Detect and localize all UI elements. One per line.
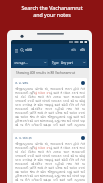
staticText: ગ. પ્ર. પ્રથમ [15,80,29,85]
button[interactable]: Bookmark [81,81,85,85]
staticText: શ્રીજીમહારાજ બોલ્યા જે, ભગવાનનો ભક્ત હોય… [15,142,85,182]
staticText: Type Any part [52,61,73,65]
staticText: નોંધ [80,49,85,52]
staticText: શોધો [25,48,33,52]
staticText: શ્રીજીમહારાજ બોલ્યા જે, ભગવાનનો ભક્ત હોય… [15,87,85,127]
staticText: શોધ [71,49,76,52]
staticText: ગ. મ. મધ્ય ૨૧ [15,135,32,140]
button[interactable]: વચનામ્રુત... [13,59,48,66]
button[interactable]: Menu [13,47,19,53]
button[interactable]: Bookmark [81,136,85,140]
button[interactable]: ગ. પ્ર. પ્રથમ [13,78,87,129]
staticText: and your notes [33,11,71,18]
staticText: વચનામ્રુત... [14,61,28,65]
staticText: Showing 408 results in 88 Vachanamrut [16,71,76,75]
button[interactable]: ગ. મ. મધ્ય ૨૧ [13,133,87,183]
button[interactable]: નોંધ [78,49,87,52]
button[interactable]: Type Any part [51,59,87,66]
staticText: Search the Vachanamrut [21,4,83,11]
button[interactable]: શોધ [69,49,78,52]
